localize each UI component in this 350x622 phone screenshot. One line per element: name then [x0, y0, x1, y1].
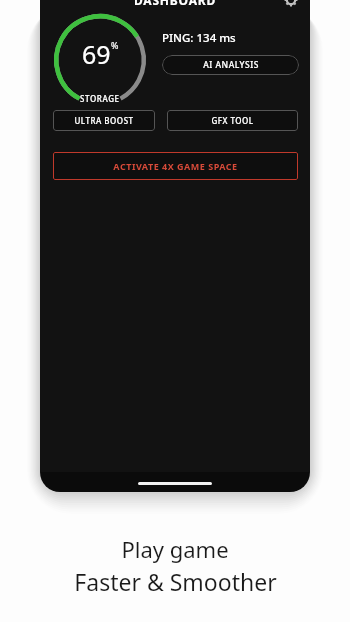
staticText: DASHBOARD [134, 0, 217, 8]
button[interactable]: ULTRA BOOST [53, 110, 155, 131]
button[interactable]: ACTIVATE 4X GAME SPACE [53, 152, 298, 180]
staticText: ACTIVATE 4X GAME SPACE [113, 160, 238, 172]
staticText: GFX TOOL [211, 115, 254, 126]
staticText: ULTRA BOOST [74, 115, 134, 126]
button[interactable]: GFX TOOL [167, 110, 298, 131]
staticText: 69 [82, 37, 111, 71]
staticText: STORAGE [80, 93, 120, 104]
button[interactable]: Settings [280, 0, 302, 11]
staticText: Faster & Smoother [74, 566, 277, 597]
staticText: PING: 134 ms [162, 30, 236, 46]
staticText: % [111, 39, 119, 51]
button[interactable]: AI ANALYSIS [162, 55, 299, 75]
staticText: Play game [121, 534, 229, 564]
staticText: AI ANALYSIS [203, 59, 259, 71]
